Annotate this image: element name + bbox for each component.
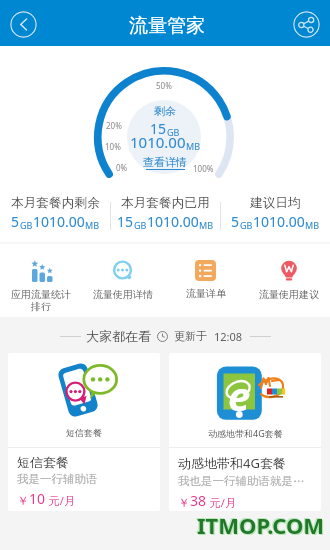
staticText: 0% bbox=[116, 162, 128, 173]
button[interactable]: 流量详单 bbox=[164, 252, 247, 314]
staticText: 流量使用建议 bbox=[259, 288, 319, 301]
staticText: 本月套餐内已用 bbox=[121, 195, 210, 211]
staticText: 流量详单 bbox=[186, 287, 226, 300]
staticText: 流量使用详情 bbox=[93, 288, 153, 301]
staticText: 应用流量统计 排行 bbox=[11, 288, 71, 313]
button[interactable]: 建议日均 bbox=[220, 191, 330, 235]
staticText: MB bbox=[305, 219, 320, 231]
staticText: 1010.00 bbox=[147, 212, 199, 231]
button[interactable]: Back bbox=[10, 11, 37, 38]
button[interactable]: 流量使用建议 bbox=[247, 252, 330, 314]
staticText: ￥ bbox=[178, 495, 190, 510]
staticText: MB bbox=[186, 140, 201, 152]
button[interactable]: e bbox=[169, 353, 321, 511]
staticText: 短信套餐 bbox=[17, 454, 69, 470]
staticText: ITMOP.COM bbox=[197, 510, 325, 540]
staticText: 1010.00 bbox=[33, 212, 85, 231]
staticText: 动感地带和4G套餐 bbox=[208, 427, 283, 439]
staticText: 本月套餐内剩余 bbox=[11, 195, 100, 211]
staticText: 建议日均 bbox=[250, 195, 301, 211]
staticText: 38 bbox=[190, 491, 207, 510]
button[interactable]: 流量使用详情 bbox=[82, 252, 164, 314]
staticText: e bbox=[228, 368, 251, 422]
button[interactable]: 本月套餐内剩余 bbox=[0, 191, 110, 235]
button[interactable]: 查看详情 bbox=[143, 155, 187, 170]
staticText: 10% bbox=[105, 141, 121, 152]
staticText: 查看详情 bbox=[143, 155, 187, 169]
staticText: ITMOP.COM bbox=[196, 509, 324, 539]
staticText: 动感地带和4G套餐 bbox=[178, 454, 286, 472]
staticText: 我也是一行辅助语就是有点… bbox=[178, 474, 315, 488]
staticText: 15 bbox=[150, 119, 167, 138]
staticText: MB bbox=[199, 219, 214, 231]
staticText: 10 bbox=[29, 489, 46, 508]
staticText: 5 bbox=[11, 212, 20, 231]
staticText: 100% bbox=[193, 163, 214, 174]
staticText: 更新于 bbox=[174, 329, 207, 343]
staticText: ITMOP.COM bbox=[198, 511, 326, 541]
staticText: 剩余 bbox=[154, 104, 176, 118]
staticText: 15 bbox=[117, 212, 134, 231]
staticText: 1010.00 bbox=[253, 212, 305, 231]
staticText: 大家都在看 bbox=[86, 328, 151, 344]
staticText: 12:08 bbox=[214, 329, 243, 344]
staticText: 短信套餐 bbox=[66, 427, 102, 438]
staticText: 元/月 bbox=[46, 493, 75, 508]
staticText: GB bbox=[167, 126, 180, 138]
staticText: ￥ bbox=[17, 493, 29, 508]
staticText: 20% bbox=[106, 120, 122, 131]
staticText: GB bbox=[134, 219, 147, 231]
button[interactable]: Share bbox=[293, 11, 320, 38]
staticText: GB bbox=[20, 219, 33, 231]
staticText: 流量管家 bbox=[129, 14, 205, 38]
staticText: MB bbox=[85, 219, 100, 231]
staticText: 我是一行辅助语 bbox=[17, 472, 98, 486]
button[interactable]: 短信套餐 bbox=[8, 353, 160, 511]
staticText: 50% bbox=[156, 80, 172, 91]
staticText: GB bbox=[240, 219, 253, 231]
staticText: 元/月 bbox=[207, 495, 236, 510]
staticText: 5 bbox=[231, 212, 240, 231]
button[interactable]: 应用流量统计 排行 bbox=[0, 252, 82, 314]
staticText: 1010.00 bbox=[130, 132, 186, 152]
button[interactable]: 本月套餐内已用 bbox=[110, 191, 220, 235]
